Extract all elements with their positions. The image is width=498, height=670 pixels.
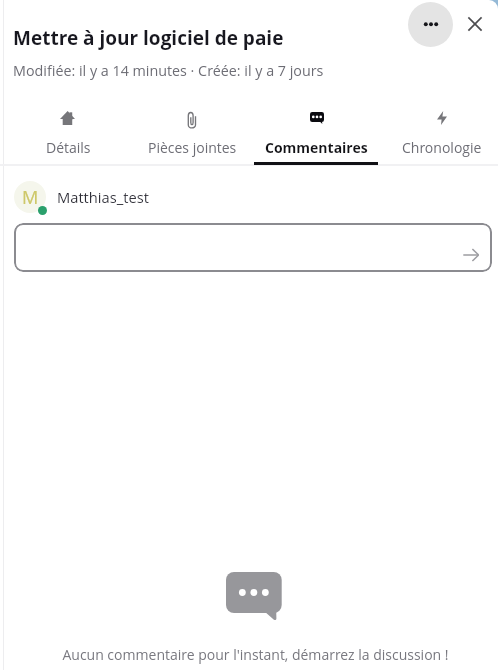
staticText: Pièces jointes [148,138,237,157]
staticText: Modifiée: il y a 14 minutes · Créée: il … [13,61,324,80]
staticText: Mettre à jour logiciel de paie [13,25,284,51]
button[interactable]: Fermer [461,10,488,37]
staticText: Détails [46,138,91,157]
button[interactable]: Ajouter un commentaire [14,223,492,272]
staticText: M [22,185,39,210]
button[interactable]: Détails [6,109,130,157]
button[interactable]: Plus d'options [408,2,453,47]
staticText: Matthias_test [57,187,149,207]
staticText: Commentaires [265,138,368,157]
staticText: Aucun commentaire pour l'instant, démarr… [62,645,449,664]
staticText: Chronologie [402,138,482,157]
button[interactable]: Chronologie [379,109,498,157]
button[interactable]: Commentaires [254,109,379,157]
button[interactable]: Pièces jointes [130,109,254,157]
